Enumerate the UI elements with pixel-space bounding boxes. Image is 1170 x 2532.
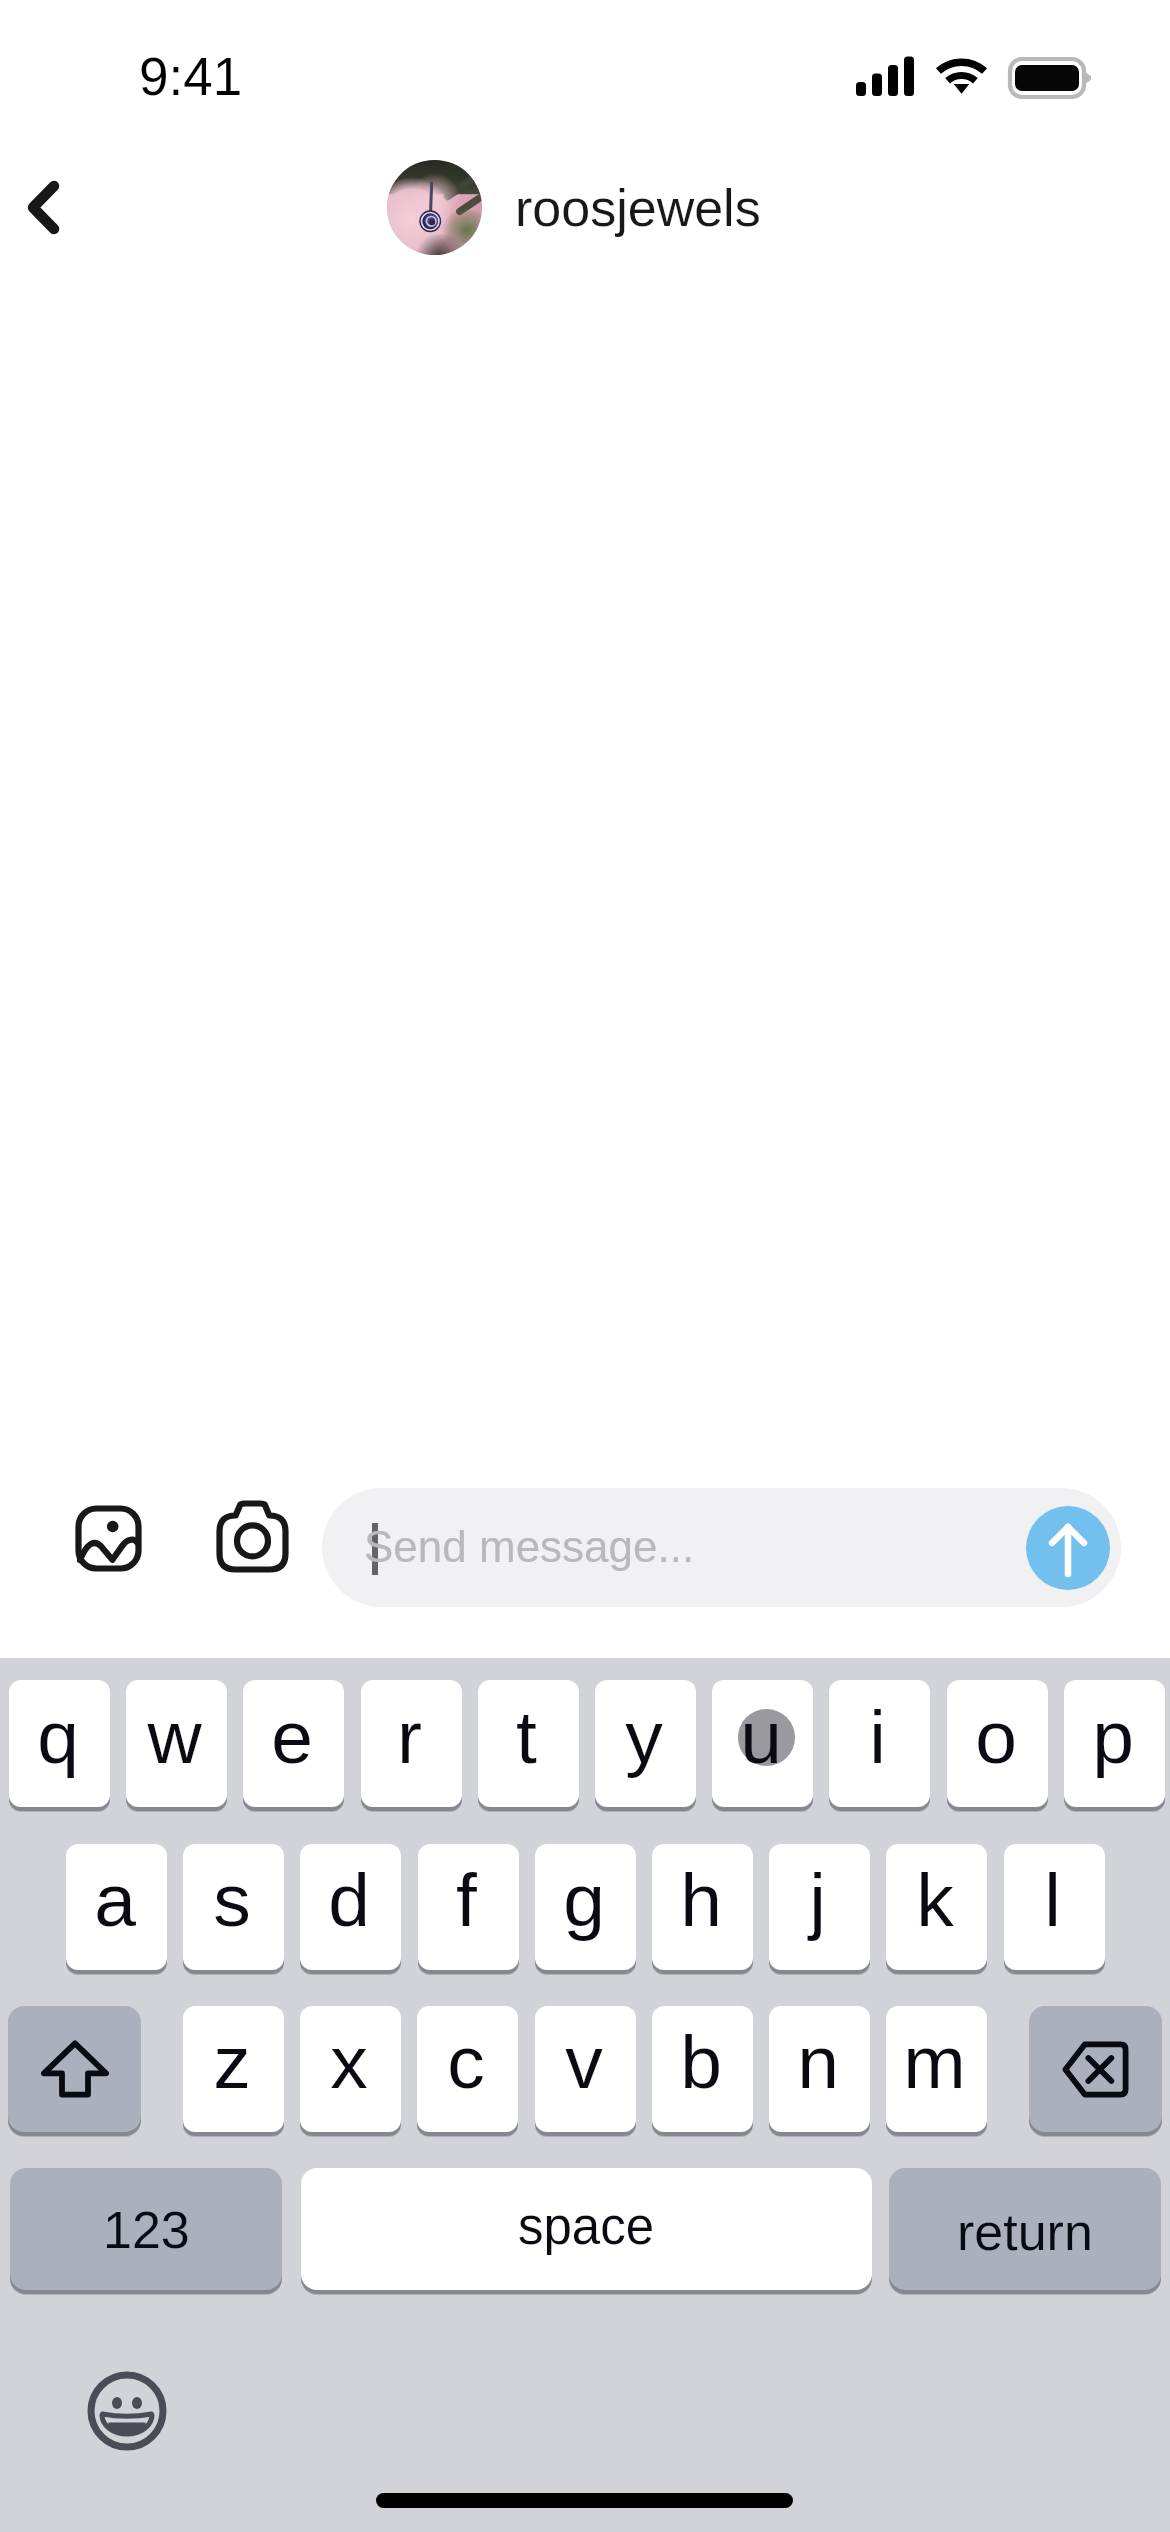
staticText: r (397, 1695, 422, 1779)
button[interactable]: x (300, 2006, 401, 2132)
button[interactable]: w (126, 1680, 227, 1807)
button[interactable]: p (1064, 1680, 1165, 1807)
staticText: q (37, 1695, 79, 1779)
staticText: s (213, 1858, 251, 1942)
staticText: w (147, 1695, 202, 1779)
button[interactable]: g (535, 1844, 636, 1970)
button[interactable]: r (361, 1680, 462, 1807)
button[interactable]: Backspace (1029, 2006, 1162, 2132)
button[interactable]: u (712, 1680, 813, 1807)
staticText: o (975, 1695, 1017, 1779)
button[interactable]: o (947, 1680, 1048, 1807)
button[interactable]: return (889, 2168, 1161, 2290)
button[interactable]: Shift (8, 2006, 141, 2132)
button[interactable]: n (769, 2006, 870, 2132)
button[interactable]: i (829, 1680, 930, 1807)
button[interactable]: c (417, 2006, 518, 2132)
button[interactable]: Send message... (322, 1488, 1121, 1607)
staticText: n (797, 2020, 839, 2104)
button[interactable]: t (478, 1680, 579, 1807)
staticText: f (456, 1858, 477, 1942)
button[interactable]: space (301, 2168, 872, 2290)
staticText: b (680, 2020, 722, 2104)
button[interactable]: roosjewels (387, 160, 761, 255)
staticText: e (271, 1695, 313, 1779)
staticText: k (916, 1858, 954, 1942)
button[interactable]: v (535, 2006, 636, 2132)
button[interactable]: e (243, 1680, 344, 1807)
button[interactable]: b (652, 2006, 753, 2132)
staticText: Send message... (364, 1522, 695, 1571)
button[interactable]: j (769, 1844, 870, 1970)
staticText: z (213, 2020, 251, 2104)
button[interactable]: Back (0, 148, 115, 268)
staticText: j (809, 1858, 826, 1942)
staticText: x (330, 2020, 368, 2104)
staticText: i (869, 1695, 886, 1779)
staticText: return (957, 2203, 1093, 2261)
button[interactable]: f (418, 1844, 519, 1970)
staticText: space (518, 2198, 655, 2255)
staticText: y (625, 1695, 663, 1779)
button[interactable]: m (886, 2006, 987, 2132)
staticText: d (328, 1858, 370, 1942)
staticText: h (680, 1858, 722, 1942)
staticText: u (740, 1695, 782, 1779)
button[interactable]: s (183, 1844, 284, 1970)
staticText: p (1092, 1695, 1134, 1779)
staticText: 123 (103, 2201, 190, 2259)
staticText: c (447, 2020, 485, 2104)
button[interactable]: k (886, 1844, 987, 1970)
button[interactable]: q (9, 1680, 110, 1807)
button[interactable]: l (1004, 1844, 1105, 1970)
staticText: m (903, 2020, 966, 2104)
button[interactable]: h (652, 1844, 753, 1970)
staticText: g (563, 1858, 605, 1942)
button[interactable]: 123 (10, 2168, 282, 2290)
button[interactable]: y (595, 1680, 696, 1807)
button[interactable]: Send (1026, 1506, 1110, 1590)
button[interactable]: z (183, 2006, 284, 2132)
staticText: a (94, 1858, 136, 1942)
button[interactable]: Photo gallery (63, 1493, 153, 1583)
staticText: t (516, 1695, 537, 1779)
staticText: roosjewels (515, 179, 761, 237)
staticText: l (1044, 1858, 1061, 1942)
staticText: v (565, 2020, 603, 2104)
button[interactable]: Camera (207, 1493, 297, 1583)
button[interactable]: a (66, 1844, 167, 1970)
staticText: 9:41 (139, 47, 243, 106)
button[interactable]: Emoji keyboard (84, 2368, 170, 2454)
button[interactable]: d (300, 1844, 401, 1970)
